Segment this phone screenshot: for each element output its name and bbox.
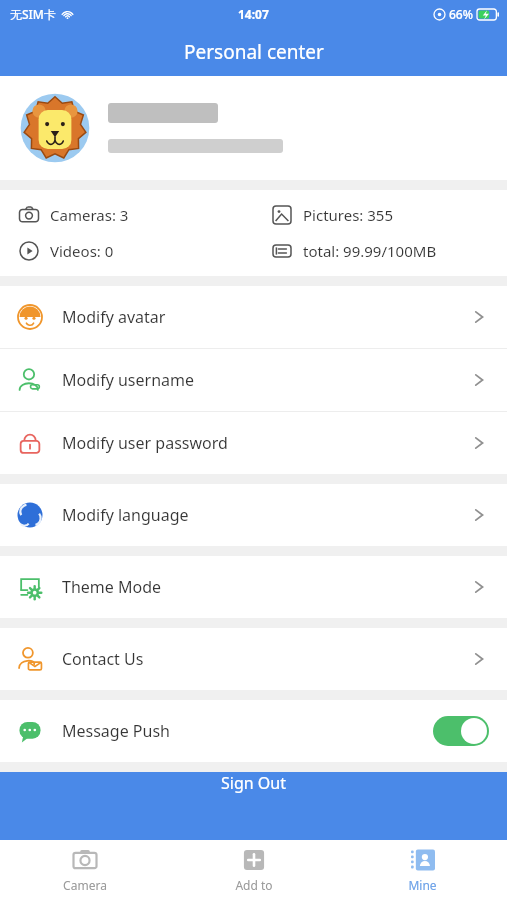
staticText: Modify language	[62, 504, 189, 526]
button[interactable]: Contact Us	[0, 628, 507, 690]
button[interactable]: Mine	[338, 840, 507, 900]
staticText: Pictures: 355	[303, 205, 394, 225]
button[interactable]: Message Push toggle	[433, 716, 489, 746]
staticText: Contact Us	[62, 648, 144, 670]
staticText: Modify user password	[62, 432, 228, 454]
staticText: total: 99.99/100MB	[303, 241, 437, 261]
button[interactable]	[0, 76, 507, 180]
staticText: Cameras: 3	[50, 205, 129, 225]
staticText: Sign Out	[221, 772, 286, 794]
button[interactable]: Theme Mode	[0, 556, 507, 618]
button[interactable]: Add to	[169, 840, 338, 900]
button[interactable]: Modify language	[0, 484, 507, 546]
staticText: Mine	[408, 877, 437, 893]
staticText: 14:07	[238, 6, 269, 22]
button[interactable]: Modify user password	[0, 412, 507, 474]
staticText: Modify username	[62, 369, 195, 391]
staticText: Theme Mode	[62, 576, 162, 598]
button[interactable]: Camera	[0, 840, 169, 900]
staticText: Camera	[63, 877, 107, 893]
button[interactable]: Modify username	[0, 349, 507, 411]
staticText: Modify avatar	[62, 306, 166, 328]
staticText: Message Push	[62, 720, 170, 742]
button[interactable]: Message Push	[0, 700, 507, 762]
staticText: Personal center	[184, 39, 324, 65]
button[interactable]: Modify avatar	[0, 286, 507, 348]
staticText: 66%	[449, 6, 473, 22]
button[interactable]: Sign Out	[0, 772, 507, 840]
staticText: 无SIM卡	[10, 6, 56, 22]
staticText: Videos: 0	[50, 241, 114, 261]
staticText: Add to	[235, 877, 273, 893]
